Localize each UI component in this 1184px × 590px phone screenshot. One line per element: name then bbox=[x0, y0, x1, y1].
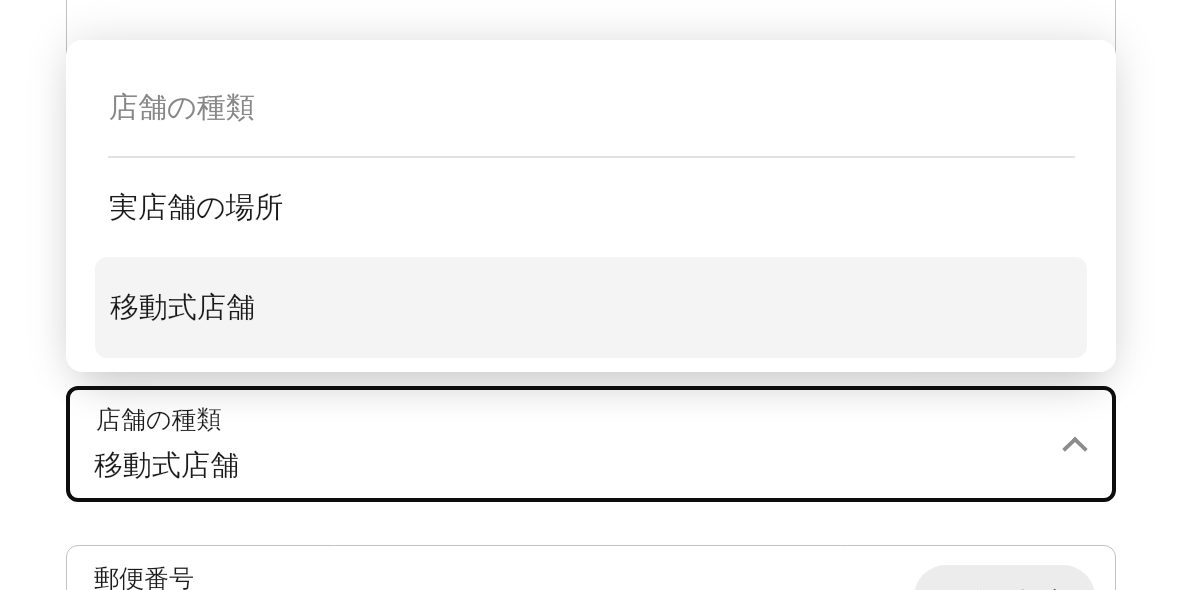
staticText: 移動式店舗 bbox=[94, 447, 239, 484]
button[interactable]: 実店舗の場所 bbox=[66, 169, 1116, 246]
other: Collapse dropdown menu bbox=[1054, 428, 1098, 472]
staticText: 住所を検索 bbox=[942, 586, 1068, 590]
button[interactable]: 住所を検索 bbox=[914, 565, 1095, 590]
staticText: 移動式店舗 bbox=[110, 289, 255, 326]
staticText: 店舗の種類 bbox=[96, 404, 222, 435]
staticText: 店舗の種類 bbox=[109, 89, 255, 126]
staticText: 郵便番号 bbox=[94, 563, 194, 590]
staticText: 実店舗の場所 bbox=[109, 189, 284, 226]
button[interactable]: 郵便番号 bbox=[66, 545, 1116, 590]
button[interactable]: 店舗の種類 bbox=[66, 386, 1116, 502]
button[interactable]: 移動式店舗 bbox=[95, 257, 1087, 358]
button[interactable] bbox=[66, 0, 1116, 80]
